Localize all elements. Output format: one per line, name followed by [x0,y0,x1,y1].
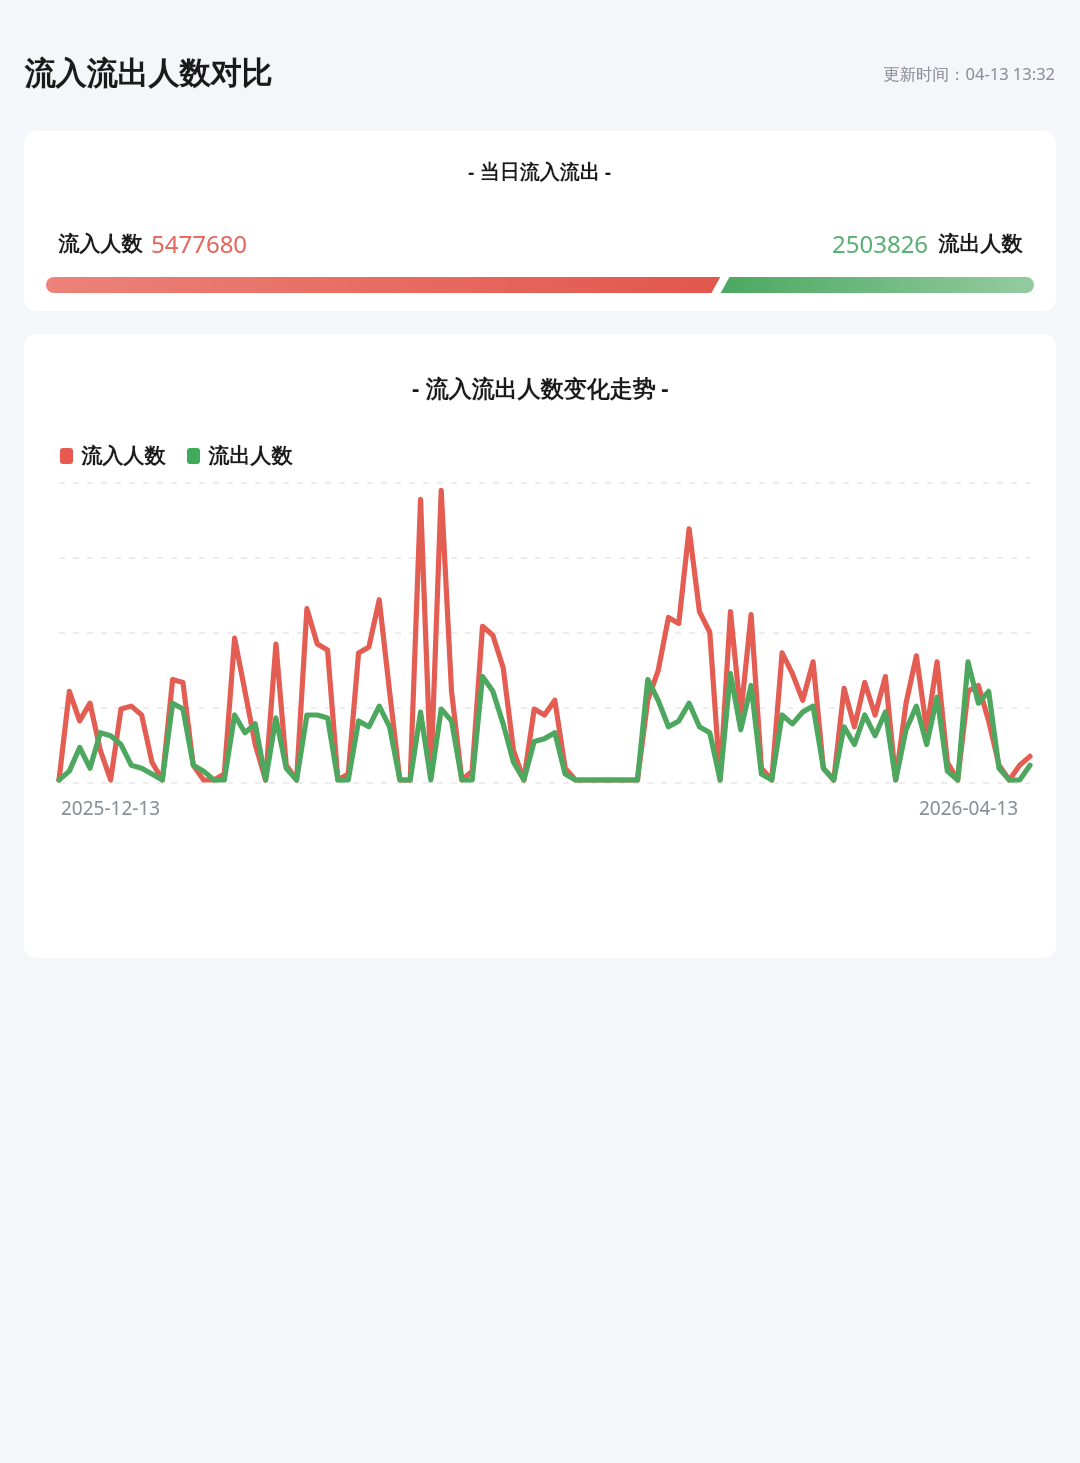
staticText: 流入人数 [81,443,165,469]
button[interactable]: - 当日流入流出 - [24,131,1056,311]
staticText: 更新时间：04-13 13:32 [883,62,1056,85]
staticText: 5477680 [151,227,248,260]
staticText: - 流入流出人数变化走势 - [412,372,669,403]
staticText: 流出人数 [208,443,292,469]
staticText: 2025-12-13 [61,795,161,821]
staticText: 2503826 [832,227,929,260]
staticText: 流出人数 [938,231,1022,257]
button[interactable]: - 流入流出人数变化走势 - [24,334,1056,958]
staticText: 流入人数 [58,231,142,257]
staticText: 2026-04-13 [919,795,1019,821]
staticText: - 当日流入流出 - [468,158,612,185]
staticText: 流入流出人数对比 [24,54,272,93]
